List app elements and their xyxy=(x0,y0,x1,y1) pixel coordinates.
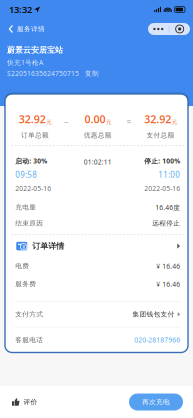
staticText: 订单详情 xyxy=(32,241,64,251)
staticText: 支付方式 xyxy=(15,310,43,318)
staticText: 2022-05-16 xyxy=(144,184,180,193)
staticText: 客服电话 xyxy=(15,336,43,344)
staticText: 020-28187966 xyxy=(134,336,180,344)
staticText: 32.92 xyxy=(19,112,46,126)
staticText: 元 xyxy=(172,119,177,126)
button[interactable]: ¥ xyxy=(6,235,189,257)
staticText: 服务费 xyxy=(15,280,36,288)
button[interactable]: 服务详情 xyxy=(0,19,51,39)
staticText: 远程停止 xyxy=(152,219,180,227)
staticText: S22051635624750715 xyxy=(7,69,79,78)
button[interactable]: 再次充电 xyxy=(129,393,183,410)
staticText: 01:02:11 xyxy=(84,158,112,166)
staticText: 元 xyxy=(106,119,111,126)
staticText: 0.00 xyxy=(84,112,105,126)
staticText: ¥ 16.46 xyxy=(156,280,180,289)
staticText: 32.92 xyxy=(144,112,171,126)
button[interactable]: 支付方式 xyxy=(6,302,189,327)
staticText: 订单总额 xyxy=(21,131,49,139)
staticText: 再次充电 xyxy=(142,398,170,406)
staticText: 优惠总额 xyxy=(84,131,112,139)
staticText: 结束原因 xyxy=(15,219,43,227)
staticText: 元 xyxy=(46,119,51,126)
staticText: − xyxy=(64,117,69,127)
button[interactable]: 复制 xyxy=(85,69,99,78)
staticText: 电费 xyxy=(15,262,29,270)
button[interactable]: 评价 xyxy=(0,386,47,418)
staticText: 评价 xyxy=(23,398,37,406)
staticText: 09:58 xyxy=(15,169,37,180)
staticText: 停止: 100% xyxy=(144,157,180,165)
staticText: 13:32 xyxy=(9,3,32,16)
staticText: 快充1号枪A xyxy=(7,58,43,67)
staticText: 启动: 30% xyxy=(15,157,47,165)
staticText: ¥ xyxy=(22,243,25,250)
button[interactable]: 020-28187966 xyxy=(134,336,180,344)
button[interactable]: 更多 xyxy=(148,23,190,35)
staticText: 16.46度 xyxy=(155,203,180,212)
staticText: 复制 xyxy=(85,69,99,78)
staticText: 服务详情 xyxy=(17,25,45,33)
staticText: 支付总额 xyxy=(146,131,174,139)
staticText: = xyxy=(127,117,132,127)
staticText: 蔚景云安居宝站 xyxy=(7,45,63,55)
staticText: 11:00 xyxy=(158,169,180,180)
staticText: 充电量 xyxy=(15,203,36,211)
staticText: 集团钱包支付 xyxy=(132,310,174,318)
staticText: 2022-05-16 xyxy=(15,184,51,193)
staticText: ¥ 16.46 xyxy=(156,262,180,271)
